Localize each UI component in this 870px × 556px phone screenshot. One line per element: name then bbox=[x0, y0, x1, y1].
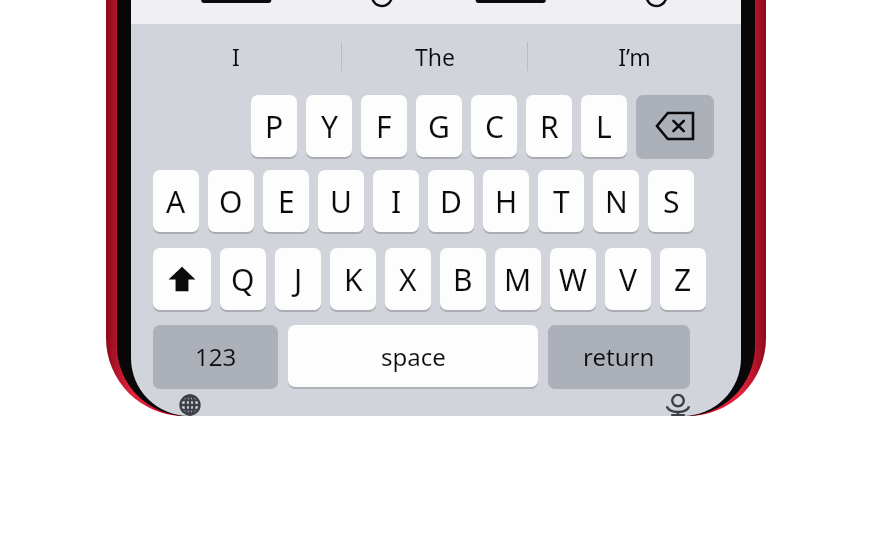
button[interactable]: H bbox=[483, 170, 529, 232]
staticText: L bbox=[596, 106, 612, 147]
button[interactable]: The bbox=[342, 24, 527, 89]
button[interactable]: S bbox=[648, 170, 694, 232]
staticText: S bbox=[663, 181, 680, 222]
staticText: return bbox=[583, 340, 655, 373]
button[interactable]: A bbox=[153, 170, 199, 232]
staticText: W bbox=[559, 259, 587, 300]
button[interactable]: X bbox=[385, 248, 431, 310]
staticText: I’m bbox=[618, 41, 651, 72]
button[interactable]: Backspace bbox=[636, 95, 714, 157]
button[interactable]: Y bbox=[306, 95, 352, 157]
button[interactable]: W bbox=[550, 248, 596, 310]
staticText: The bbox=[415, 41, 455, 72]
staticText: P bbox=[265, 106, 284, 147]
button[interactable]: Dictation bbox=[655, 394, 701, 416]
button[interactable]: Q bbox=[220, 248, 266, 310]
staticText: R bbox=[540, 106, 559, 147]
staticText: J bbox=[294, 259, 303, 300]
staticText: Q bbox=[231, 259, 255, 300]
button[interactable]: R bbox=[526, 95, 572, 157]
staticText: X bbox=[399, 259, 417, 300]
button[interactable]: F bbox=[361, 95, 407, 157]
staticText: I bbox=[391, 181, 402, 222]
button[interactable]: D bbox=[428, 170, 474, 232]
button[interactable]: Switch keyboard language bbox=[167, 394, 213, 416]
button[interactable]: P bbox=[251, 95, 297, 157]
button[interactable]: E bbox=[263, 170, 309, 232]
button[interactable]: space bbox=[288, 325, 538, 387]
staticText: U bbox=[330, 181, 352, 222]
staticText: E bbox=[278, 181, 295, 222]
staticText: O bbox=[219, 181, 243, 222]
staticText: 123 bbox=[195, 340, 237, 373]
staticText: Y bbox=[321, 106, 338, 147]
button[interactable]: M bbox=[495, 248, 541, 310]
button[interactable]: L bbox=[581, 95, 627, 157]
button[interactable]: U bbox=[318, 170, 364, 232]
button[interactable]: O bbox=[208, 170, 254, 232]
staticText: H bbox=[495, 181, 518, 222]
button[interactable]: G bbox=[416, 95, 462, 157]
button[interactable]: B bbox=[440, 248, 486, 310]
staticText: M bbox=[504, 259, 532, 300]
button[interactable]: C bbox=[471, 95, 517, 157]
button[interactable]: I bbox=[131, 24, 341, 89]
staticText: C bbox=[485, 106, 504, 147]
button[interactable]: I’m bbox=[528, 24, 741, 89]
button[interactable]: K bbox=[330, 248, 376, 310]
staticText: V bbox=[619, 259, 637, 300]
staticText: B bbox=[453, 259, 473, 300]
staticText: I bbox=[232, 41, 240, 72]
staticText: K bbox=[344, 259, 363, 300]
staticText: N bbox=[605, 181, 628, 222]
button[interactable]: N bbox=[593, 170, 639, 232]
staticText: T bbox=[553, 181, 570, 222]
staticText: Z bbox=[674, 259, 692, 300]
button[interactable]: 123 bbox=[153, 325, 278, 387]
staticText: F bbox=[376, 106, 392, 147]
button[interactable]: T bbox=[538, 170, 584, 232]
button[interactable]: I bbox=[373, 170, 419, 232]
button[interactable]: J bbox=[275, 248, 321, 310]
staticText: D bbox=[440, 181, 462, 222]
button[interactable]: Z bbox=[660, 248, 706, 310]
staticText: A bbox=[166, 181, 186, 222]
button[interactable]: Shift bbox=[153, 248, 211, 310]
staticText: G bbox=[428, 106, 450, 147]
button[interactable]: return bbox=[548, 325, 690, 387]
button[interactable]: V bbox=[605, 248, 651, 310]
staticText: space bbox=[381, 340, 446, 373]
